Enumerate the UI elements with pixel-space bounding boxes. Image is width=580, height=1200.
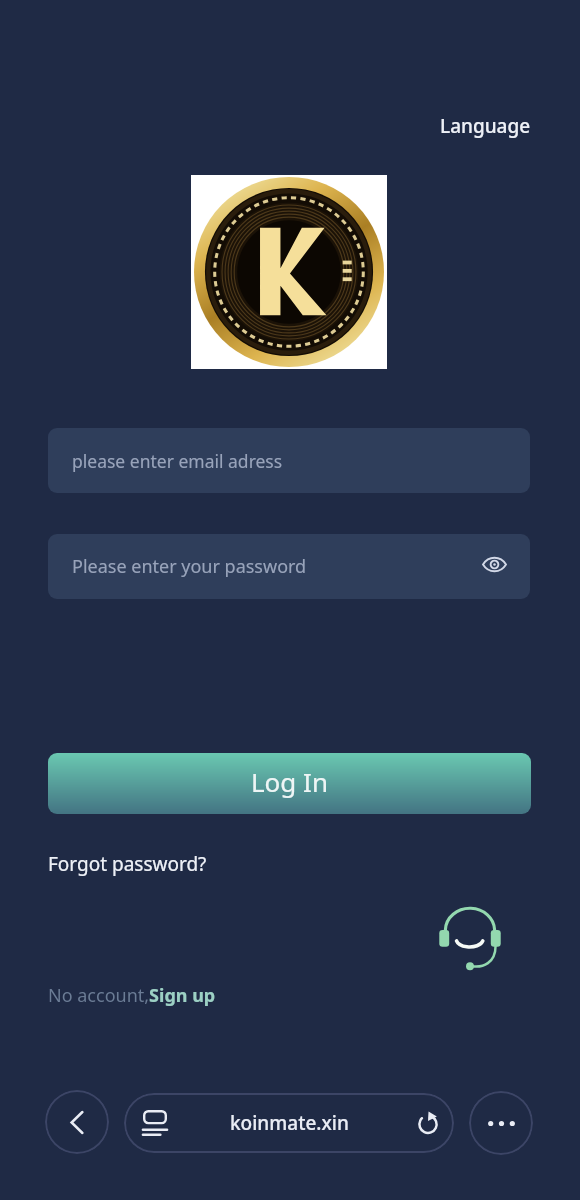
button[interactable]: Customer support <box>427 896 513 982</box>
button[interactable]: Language <box>428 101 543 151</box>
button[interactable]: please enter email adress <box>48 428 530 493</box>
staticText: No account,Sign up <box>48 983 216 1008</box>
staticText: Please enter your password <box>72 554 307 579</box>
button[interactable]: Log In <box>48 753 531 814</box>
staticText: koinmate.xin <box>230 1110 349 1136</box>
staticText: please enter email adress <box>72 449 283 473</box>
button[interactable]: koinmate.xin <box>124 1093 454 1153</box>
button[interactable]: Reload <box>415 1110 441 1136</box>
staticText: Language <box>440 113 531 139</box>
staticText: Forgot password? <box>48 851 207 877</box>
button[interactable]: No account,Sign up <box>38 973 226 1018</box>
staticText: Log In <box>251 764 328 799</box>
button[interactable]: Please enter your password <box>48 534 530 599</box>
button[interactable]: More options <box>469 1091 533 1155</box>
button[interactable]: Forgot password? <box>38 841 217 887</box>
button[interactable]: Show password <box>471 541 517 587</box>
button[interactable]: Back <box>45 1090 109 1154</box>
